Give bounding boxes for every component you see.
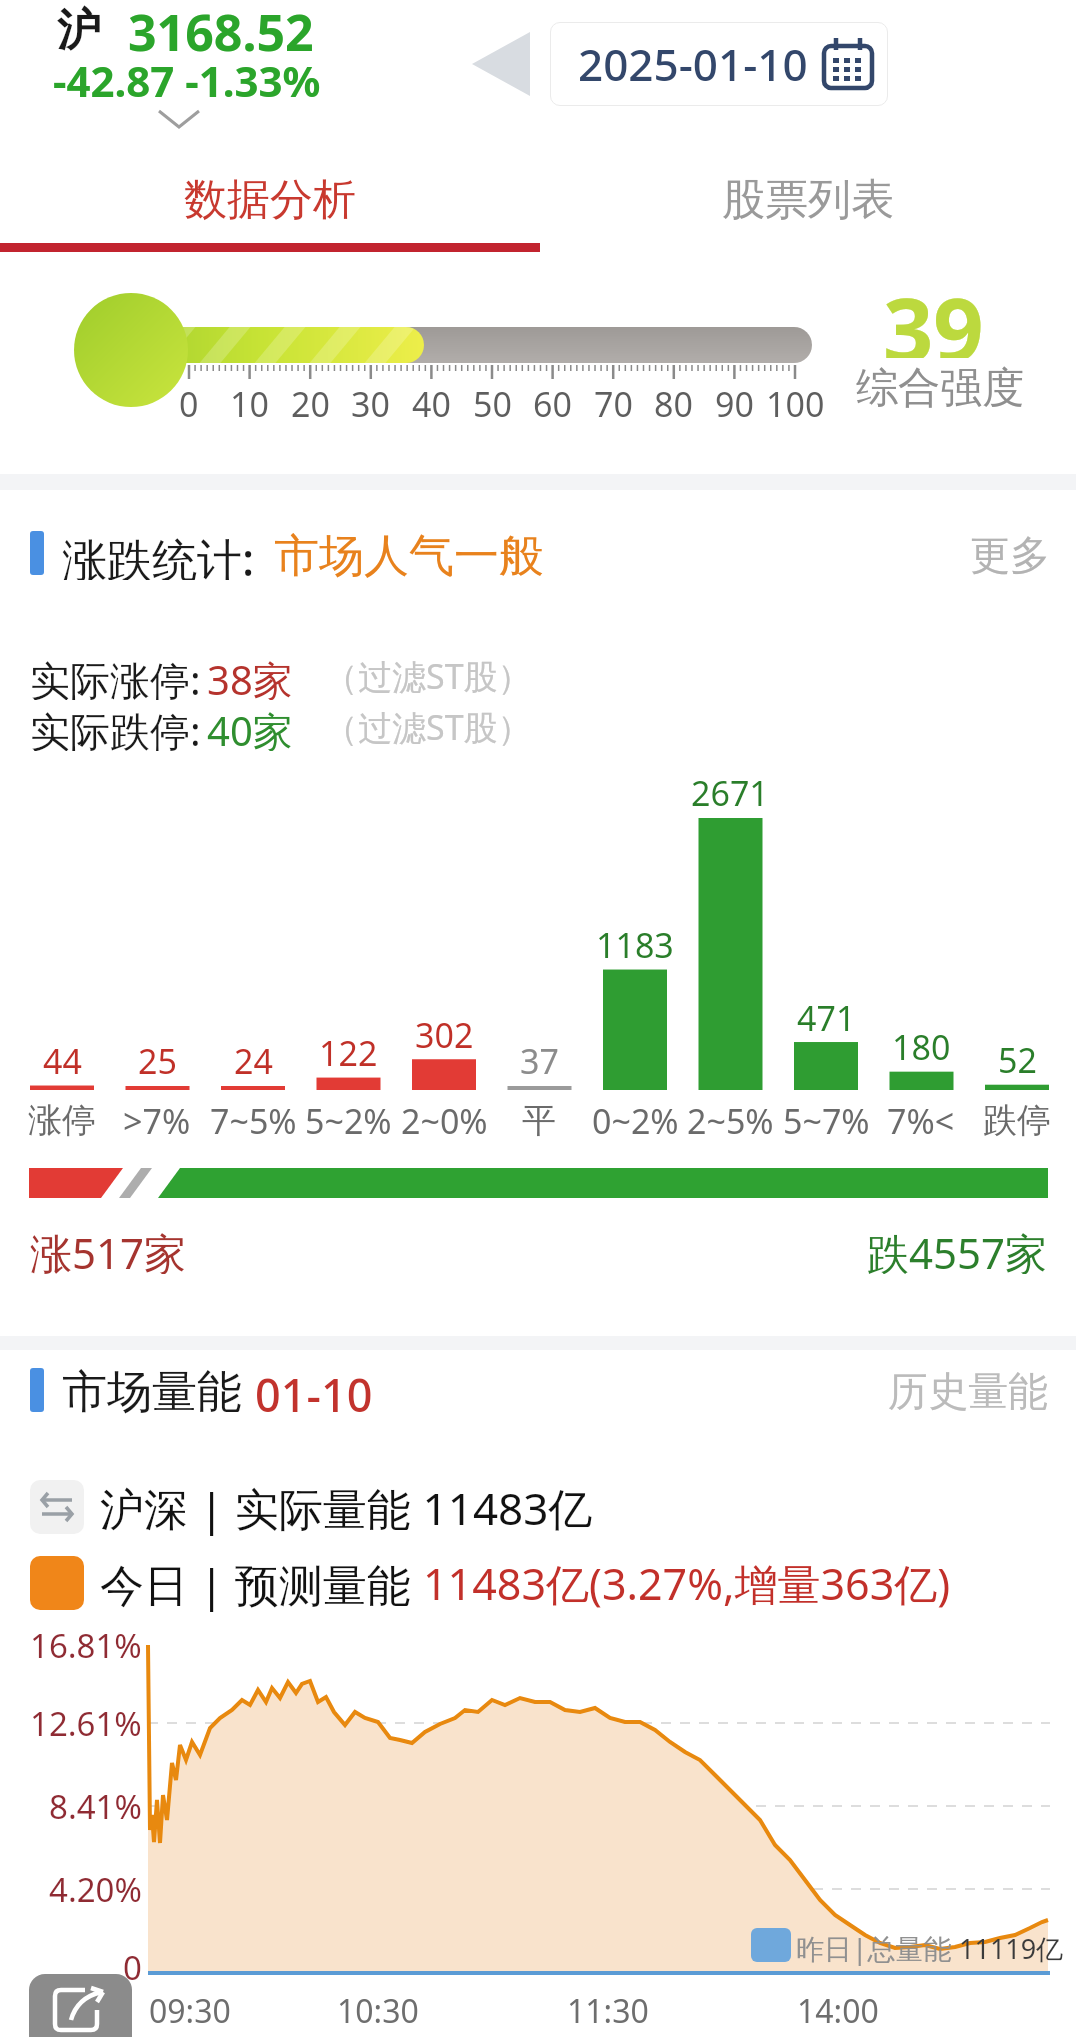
button[interactable]: 股票列表	[540, 168, 1076, 232]
staticText: 70	[594, 381, 633, 427]
staticText: 38家	[207, 652, 293, 700]
staticText: 昨日|总量能	[796, 1929, 959, 1967]
button[interactable]: 历史量能	[880, 1366, 1048, 1414]
staticText: 3168.52	[128, 0, 314, 58]
staticText: 90	[715, 381, 754, 427]
staticText: 实际跌停:	[30, 703, 201, 751]
staticText: 更多	[970, 530, 1050, 578]
staticText: 24	[234, 1038, 273, 1082]
staticText: 471	[797, 995, 856, 1039]
staticText: 01-10	[255, 1364, 373, 1416]
staticText: 市场量能	[62, 1364, 242, 1416]
staticText: 30	[351, 381, 390, 427]
staticText: 历史量能	[888, 1366, 1048, 1414]
staticText: 实际涨停:	[30, 652, 201, 700]
staticText: 2~5%	[687, 1098, 774, 1142]
staticText: 数据分析	[184, 173, 356, 227]
staticText: 12.61%	[30, 1701, 142, 1745]
staticText: 市场人气一般	[274, 528, 544, 580]
staticText: 10:30	[337, 1989, 419, 2033]
staticText: 5~2%	[305, 1098, 392, 1142]
staticText: （过滤ST股）	[324, 704, 532, 750]
staticText: 2~0%	[401, 1098, 488, 1142]
staticText: 37	[520, 1038, 559, 1082]
staticText: 80	[654, 381, 693, 427]
staticText: 8.41%	[49, 1784, 142, 1828]
staticText: 0	[179, 381, 199, 427]
staticText: 平	[522, 1099, 556, 1142]
staticText: 50	[473, 381, 512, 427]
staticText: 60	[533, 381, 572, 427]
staticText: 25	[138, 1038, 177, 1082]
button[interactable]	[468, 30, 532, 98]
staticText: 39	[883, 268, 984, 358]
staticText: 302	[415, 1012, 474, 1056]
staticText: 综合强度	[856, 362, 1024, 414]
staticText: 52	[998, 1037, 1037, 1081]
button[interactable]: 更多	[960, 530, 1050, 578]
staticText: 跌停	[983, 1099, 1051, 1142]
staticText: 今日 | 预测量能	[100, 1554, 423, 1612]
staticText: 7~5%	[210, 1098, 297, 1142]
staticText: 122	[319, 1030, 378, 1074]
staticText: 跌4557家	[867, 1224, 1048, 1274]
staticText: 40	[412, 381, 451, 427]
staticText: 2671	[691, 770, 769, 814]
button[interactable]: 数据分析	[0, 168, 540, 232]
button[interactable]	[29, 1974, 132, 2037]
staticText: 2025-01-10	[578, 34, 808, 94]
staticText: 20	[291, 381, 330, 427]
staticText: 股票列表	[722, 173, 894, 227]
staticText: 100	[766, 381, 825, 427]
staticText: （过滤ST股）	[324, 653, 532, 699]
staticText: 180	[892, 1024, 951, 1068]
staticText: 1183	[596, 922, 674, 966]
staticText: 沪	[57, 3, 101, 58]
staticText: >7%	[123, 1098, 191, 1142]
staticText: 16.81%	[30, 1623, 142, 1667]
staticText: 涨517家	[30, 1224, 187, 1274]
staticText: 0~2%	[592, 1098, 679, 1142]
staticText: 44	[43, 1038, 82, 1082]
staticText: 09:30	[149, 1989, 231, 2033]
staticText: 14:00	[797, 1989, 879, 2033]
staticText: 11119亿	[959, 1930, 1064, 1967]
staticText: 10	[230, 381, 269, 427]
staticText: 11:30	[567, 1989, 649, 2033]
staticText: 5~7%	[783, 1098, 870, 1142]
staticText: 4.20%	[49, 1867, 142, 1911]
staticText: 沪深 | 实际量能 11483亿	[100, 1478, 593, 1536]
staticText: 7%<	[887, 1098, 955, 1142]
staticText: 涨停	[28, 1099, 96, 1142]
staticText: 11483亿(3.27%,增量363亿)	[423, 1554, 951, 1612]
staticText: 40家	[207, 703, 293, 751]
staticText: 0	[123, 1945, 142, 1989]
staticText: -42.87 -1.33%	[53, 52, 321, 106]
button[interactable]: 2025-01-10	[550, 22, 888, 106]
staticText: 涨跌统计:	[62, 528, 255, 580]
